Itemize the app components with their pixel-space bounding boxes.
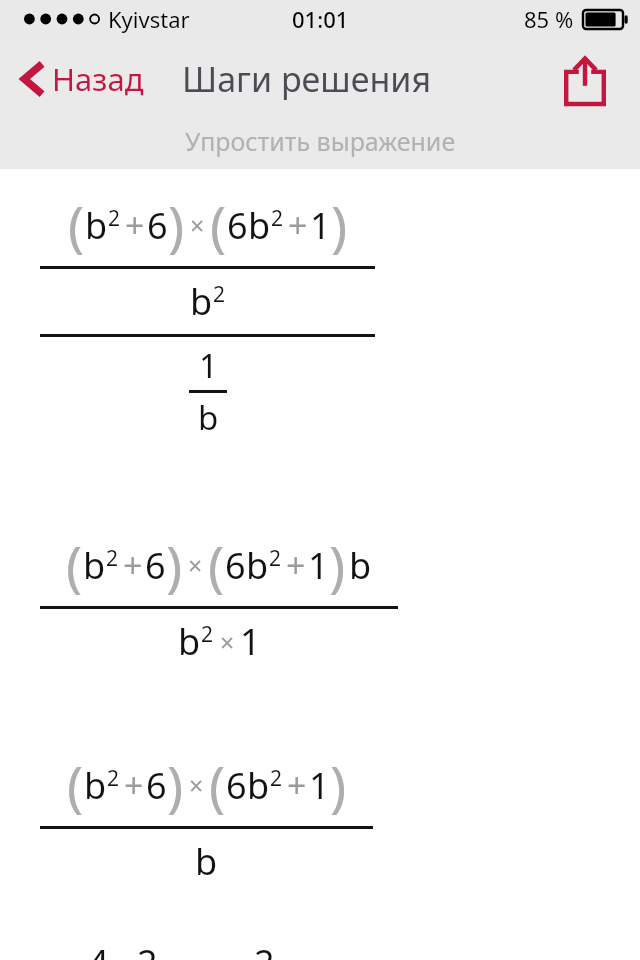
staticText: Упростить выражение [185,124,456,158]
staticText: Назад [52,58,144,100]
staticText: ) [167,748,184,822]
staticText: 4 [88,938,109,960]
staticText: 6 [225,541,246,590]
staticText: 2 [254,938,275,960]
staticText: + [288,202,308,248]
staticText: b [349,541,372,590]
staticText: + [124,762,144,808]
button[interactable]: Share [552,48,618,114]
button[interactable]: Назад [14,52,150,106]
staticText: 01:01 [292,4,349,34]
staticText: b [248,201,271,250]
staticText: + [123,542,143,588]
staticText: ( [209,748,226,822]
staticText: ( [66,528,83,602]
staticText: b [190,277,213,326]
staticText: × [189,768,204,802]
staticText: 1 [199,343,218,388]
staticText: 6 [226,761,247,810]
staticText: Шаги решения [182,56,432,102]
staticText: × [220,625,235,659]
staticText: ( [210,188,227,262]
staticText: 2 [106,544,119,573]
staticText: ( [67,748,84,822]
staticText: b [198,395,219,440]
staticText: Kyivstar [108,4,190,34]
staticText: ) [331,188,348,262]
staticText: ) [330,748,347,822]
staticText: b [247,761,270,810]
staticText: + [286,542,306,588]
staticText: b [195,837,218,886]
staticText: 6 [147,201,168,250]
staticText: 2 [107,764,120,793]
staticText: 2 [137,938,158,960]
staticText: b [178,617,201,666]
staticText: 2 [269,544,282,573]
staticText: + [287,762,307,808]
staticText: 2 [108,204,121,233]
staticText: b [83,541,106,590]
staticText: ( [68,188,85,262]
staticText: b [246,541,269,590]
staticText: 2 [201,620,214,649]
staticText: × [188,548,203,582]
staticText: ) [168,188,185,262]
staticText: 2 [270,764,283,793]
staticText: 6 [227,201,248,250]
staticText: 1 [240,617,261,666]
staticText: 6 [146,761,167,810]
staticText: ) [329,528,346,602]
staticText: 85 % [524,4,574,34]
staticText: + [125,202,145,248]
staticText: 2 [271,204,284,233]
staticText: ) [166,528,183,602]
staticText: 2 [213,280,226,309]
staticText: b [84,761,107,810]
staticText: 1 [309,761,330,810]
staticText: 1 [308,541,329,590]
staticText: ( [208,528,225,602]
staticText: 6 [145,541,166,590]
staticText: b [85,201,108,250]
staticText: × [190,208,205,242]
staticText: 1 [310,201,331,250]
